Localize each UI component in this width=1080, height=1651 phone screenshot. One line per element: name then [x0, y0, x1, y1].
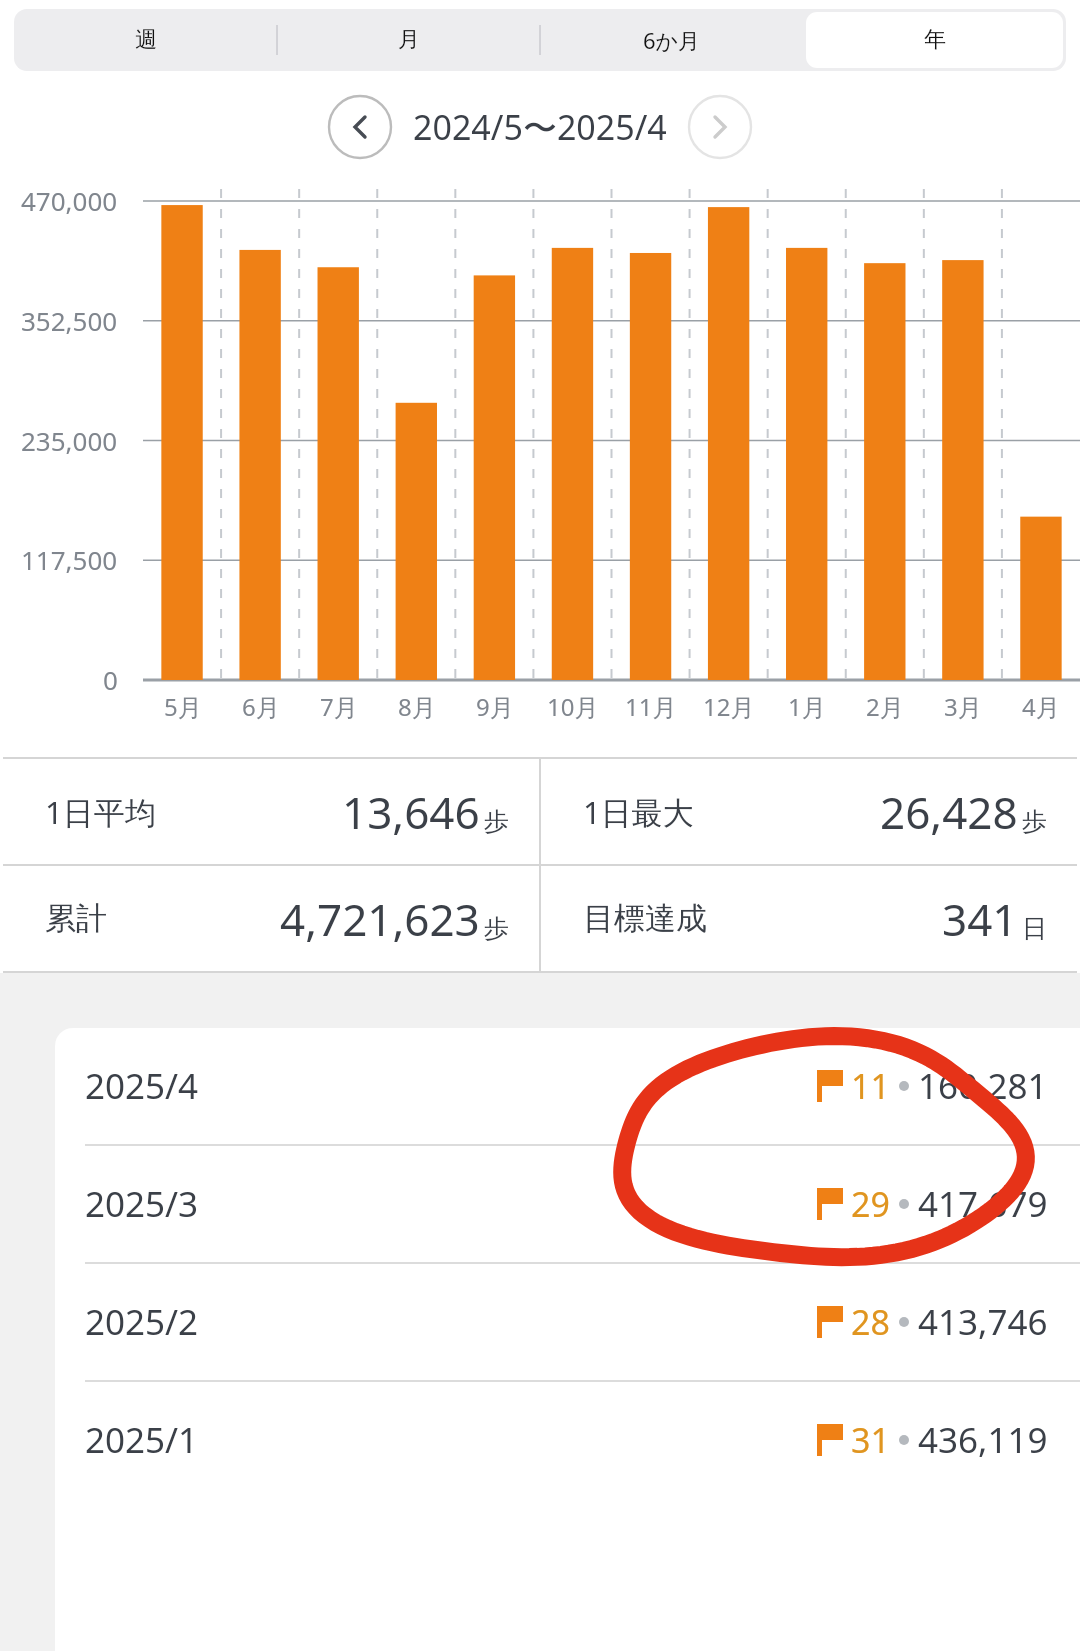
staticText: 10月 [547, 690, 599, 723]
staticText: 年 [924, 26, 946, 54]
button[interactable]: 累計 [3, 866, 539, 971]
staticText: 2025/2 [85, 1298, 199, 1346]
staticText: 29 [851, 1181, 890, 1227]
staticText: 目標達成 [583, 899, 707, 938]
staticText: 累計 [45, 899, 107, 938]
staticText: 28 [851, 1299, 890, 1345]
staticText: 日 [1022, 913, 1047, 944]
staticText: 歩 [484, 806, 509, 837]
staticText: 413,746 [918, 1298, 1048, 1346]
staticText: 6か月 [643, 25, 701, 55]
staticText: 160,281 [918, 1062, 1048, 1110]
staticText: 週 [135, 26, 157, 54]
staticText: 13,646 [342, 782, 480, 842]
button[interactable]: 6か月 [543, 12, 800, 68]
staticText: 2025/4 [85, 1062, 199, 1110]
staticText: 352,500 [21, 303, 118, 338]
staticText: 0 [103, 662, 118, 697]
staticText: 31 [851, 1417, 890, 1463]
staticText: 2024/5〜2025/4 [413, 104, 667, 150]
staticText: 歩 [484, 913, 509, 944]
staticText: 2025/3 [85, 1180, 199, 1228]
staticText: 417,679 [918, 1180, 1048, 1228]
staticText: 235,000 [21, 423, 118, 458]
staticText: 4月 [1022, 690, 1060, 723]
button[interactable]: Next period [687, 94, 753, 160]
staticText: 6月 [242, 690, 280, 723]
button[interactable]: 2025/4 [55, 1028, 1080, 1144]
staticText: 26,428 [880, 782, 1018, 842]
staticText: 歩 [1022, 806, 1047, 837]
button[interactable]: 年 [806, 12, 1063, 68]
staticText: 月 [398, 26, 420, 54]
staticText: 4,721,623 [280, 889, 480, 949]
button[interactable]: 1日最大 [541, 759, 1077, 864]
staticText: 341 [942, 889, 1018, 949]
staticText: 1月 [788, 690, 826, 723]
button[interactable]: 2025/1 [55, 1382, 1080, 1498]
staticText: 11 [851, 1063, 890, 1109]
button[interactable]: Previous period [327, 94, 393, 160]
button[interactable]: 1日平均 [3, 759, 539, 864]
staticText: 9月 [476, 690, 514, 723]
staticText: 436,119 [918, 1416, 1048, 1464]
staticText: 5月 [164, 690, 202, 723]
button[interactable]: 2025/3 [55, 1146, 1080, 1262]
staticText: 7月 [320, 690, 358, 723]
staticText: 470,000 [21, 183, 118, 218]
staticText: 11月 [625, 690, 677, 723]
button[interactable]: 週 [17, 12, 274, 68]
staticText: 117,500 [21, 542, 118, 577]
staticText: 12月 [703, 690, 755, 723]
staticText: 2月 [866, 690, 904, 723]
staticText: 1日最大 [583, 791, 694, 833]
button[interactable]: 目標達成 [541, 866, 1077, 971]
button[interactable]: 月 [280, 12, 537, 68]
staticText: 8月 [398, 690, 436, 723]
staticText: 3月 [944, 690, 982, 723]
staticText: 2025/1 [85, 1416, 199, 1464]
staticText: 1日平均 [45, 791, 156, 833]
button[interactable]: 2025/2 [55, 1264, 1080, 1380]
